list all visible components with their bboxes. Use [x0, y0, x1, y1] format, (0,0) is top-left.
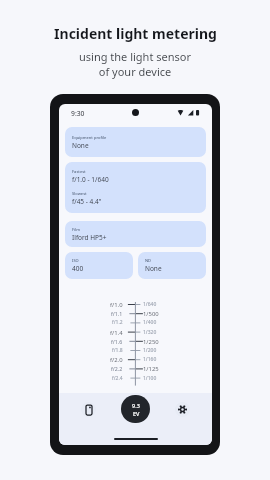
staticText: f/45 - 4.4"	[72, 197, 102, 206]
button[interactable]: ND	[138, 252, 206, 279]
staticText: f/2.0	[110, 356, 123, 364]
staticText: 9:30	[71, 109, 85, 118]
button[interactable]: Film	[65, 221, 206, 247]
staticText: f/1.0	[110, 301, 123, 309]
staticText: 1/320	[143, 329, 157, 336]
button[interactable]: Equipment profile	[65, 127, 206, 157]
staticText: f/1.1	[111, 310, 123, 317]
staticText: ISO	[72, 258, 79, 263]
staticText: EV	[133, 410, 140, 417]
button[interactable]: ISO	[65, 252, 133, 279]
staticText: f/1.0 - 1/640	[72, 175, 109, 184]
staticText: Equipment profile	[72, 135, 107, 140]
staticText: 1/640	[143, 301, 157, 308]
staticText: 1/125	[143, 365, 159, 373]
staticText: f/1.4	[110, 329, 123, 337]
staticText: ND	[145, 258, 152, 263]
staticText: 9.3	[132, 402, 140, 409]
staticText: f/2.4	[112, 375, 123, 382]
staticText: 1/200	[143, 347, 157, 354]
staticText: f/1.6	[111, 338, 123, 345]
staticText: None	[145, 264, 162, 273]
staticText: f/1.8	[112, 347, 123, 354]
staticText: Film	[72, 227, 81, 232]
staticText: 1/100	[143, 375, 157, 382]
staticText: None	[72, 141, 89, 150]
button[interactable]: Exposure value	[121, 395, 150, 423]
staticText: using the light sensor of your device	[79, 49, 191, 79]
button[interactable]: Device sensor	[81, 402, 96, 417]
staticText: f/2.2	[111, 365, 123, 372]
staticText: Slowest	[72, 191, 87, 196]
staticText: 1/400	[143, 319, 157, 326]
staticText: 1/500	[143, 310, 159, 318]
staticText: Fastest	[72, 169, 86, 174]
staticText: 1/250	[143, 338, 159, 346]
button[interactable]: Settings	[175, 402, 190, 417]
staticText: Ilford HP5+	[72, 233, 107, 242]
staticText: 400	[72, 264, 84, 273]
button[interactable]: Fastest	[65, 162, 206, 213]
staticText: 1/160	[143, 356, 157, 363]
staticText: f/1.2	[112, 319, 123, 326]
staticText: Incident light metering	[54, 24, 217, 43]
